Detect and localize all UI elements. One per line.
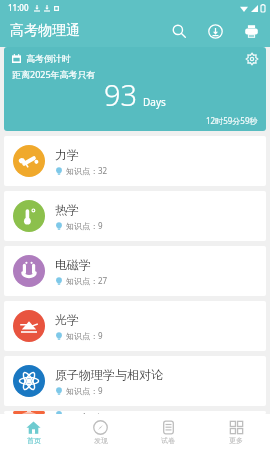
button[interactable]: 原子物理学与相对论	[4, 356, 266, 406]
button[interactable]: 热学	[4, 191, 266, 241]
staticText: 发现	[94, 436, 108, 445]
button[interactable]: Download	[204, 20, 226, 42]
staticText: Days	[143, 95, 166, 109]
staticText: 知识点：27	[66, 275, 108, 286]
staticText: 试卷	[161, 436, 175, 445]
button[interactable]: 电磁学	[4, 246, 266, 296]
button[interactable]: Settings	[245, 52, 259, 66]
staticText: 93	[104, 75, 138, 114]
staticText: 知识点：9	[66, 330, 103, 341]
staticText: 知识点：9	[66, 385, 103, 396]
staticText: 热学	[55, 202, 79, 217]
button[interactable]: 发现	[67, 414, 134, 450]
button[interactable]: 高考倒计时	[4, 47, 266, 131]
staticText: 知识点：32	[66, 165, 108, 176]
staticText: 物理实验	[55, 411, 103, 414]
staticText: 力学	[55, 147, 79, 162]
button[interactable]: 更多	[202, 414, 270, 450]
staticText: 高考物理通	[10, 22, 80, 40]
staticText: 电磁学	[55, 257, 91, 272]
staticText: 12时59分59秒	[206, 115, 258, 126]
staticText: 光学	[55, 312, 79, 327]
staticText: 更多	[229, 436, 243, 445]
button[interactable]: 光学	[4, 301, 266, 351]
staticText: 11:00	[8, 2, 29, 13]
button[interactable]: 物理实验	[4, 411, 266, 414]
staticText: 原子物理学与相对论	[55, 367, 163, 382]
button[interactable]: 首页	[0, 414, 67, 450]
button[interactable]: Print	[240, 20, 262, 42]
staticText: 距离2025年高考只有	[12, 68, 96, 80]
button[interactable]: 力学	[4, 136, 266, 186]
staticText: 首页	[27, 436, 41, 445]
staticText: 知识点：9	[66, 220, 103, 231]
staticText: 高考倒计时	[26, 53, 71, 64]
button[interactable]: Search	[168, 20, 190, 42]
button[interactable]: 试卷	[134, 414, 202, 450]
